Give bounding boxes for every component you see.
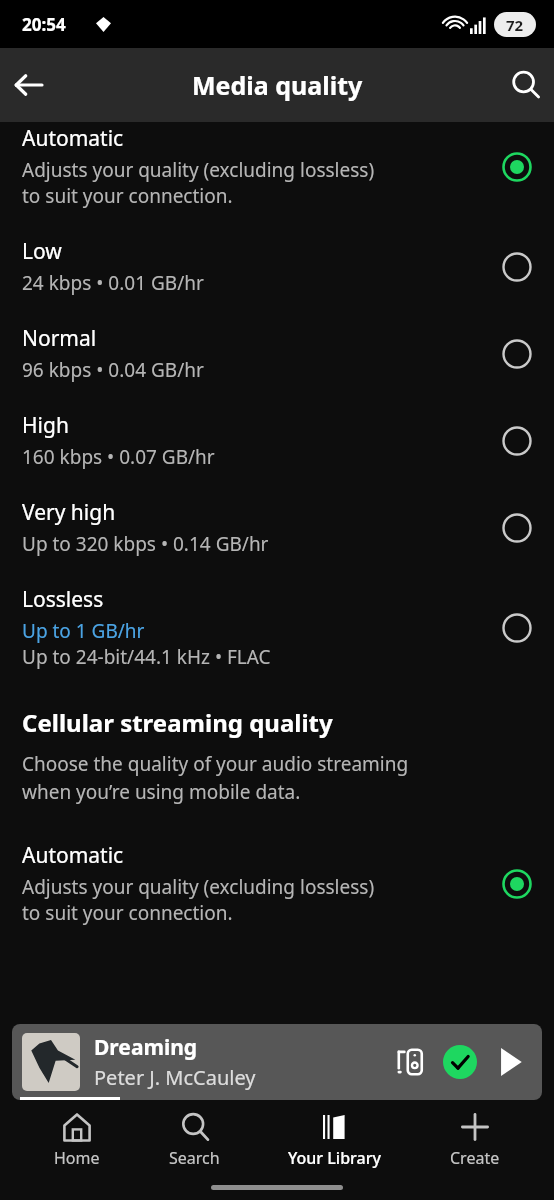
- staticText: Automatic: [22, 841, 124, 870]
- button[interactable]: Automatic: [0, 124, 554, 223]
- staticText: Media quality: [192, 68, 363, 102]
- staticText: Very high: [22, 498, 116, 527]
- staticText: Up to 24-bit/44.1 kHz • FLAC: [22, 644, 271, 670]
- button[interactable]: Dreaming: [12, 1024, 542, 1100]
- button[interactable]: Low: [0, 223, 554, 310]
- staticText: Choose the quality of your audio streami…: [22, 751, 409, 805]
- staticText: Automatic: [22, 124, 124, 153]
- button[interactable]: Lossless: [0, 571, 554, 684]
- staticText: Cellular streaming quality: [22, 706, 333, 739]
- staticText: Up to 1 GB/hr: [22, 618, 145, 644]
- staticText: Home: [54, 1147, 100, 1169]
- staticText: Lossless: [22, 585, 104, 614]
- button[interactable]: Normal: [0, 310, 554, 397]
- staticText: Normal: [22, 324, 97, 353]
- button[interactable]: Connect to a device: [388, 1040, 432, 1084]
- staticText: 160 kbps • 0.07 GB/hr: [22, 444, 215, 470]
- staticText: 96 kbps • 0.04 GB/hr: [22, 357, 204, 383]
- staticText: 72: [506, 15, 524, 35]
- staticText: 20:54: [22, 13, 66, 36]
- button[interactable]: Your Library: [274, 1108, 395, 1173]
- staticText: to suit your connection.: [22, 900, 233, 926]
- button[interactable]: High: [0, 397, 554, 484]
- button[interactable]: Home: [40, 1108, 114, 1173]
- button[interactable]: Create: [436, 1108, 514, 1173]
- button[interactable]: Search: [155, 1108, 234, 1173]
- button[interactable]: Search: [498, 57, 554, 113]
- staticText: Peter J. McCauley: [94, 1064, 256, 1091]
- staticText: High: [22, 411, 69, 440]
- staticText: Create: [450, 1147, 500, 1169]
- staticText: Search: [169, 1147, 220, 1169]
- staticText: Dreaming: [94, 1033, 198, 1062]
- button[interactable]: Saved: [438, 1040, 482, 1084]
- staticText: Adjusts your quality (excluding lossless…: [22, 157, 375, 183]
- staticText: Your Library: [288, 1147, 381, 1169]
- staticText: to suit your connection.: [22, 183, 233, 209]
- button[interactable]: Back: [0, 57, 56, 113]
- staticText: Adjusts your quality (excluding lossless…: [22, 874, 375, 900]
- staticText: Up to 320 kbps • 0.14 GB/hr: [22, 531, 269, 557]
- staticText: 24 kbps • 0.01 GB/hr: [22, 270, 204, 296]
- button[interactable]: Automatic: [0, 827, 554, 940]
- button[interactable]: Very high: [0, 484, 554, 571]
- staticText: Low: [22, 237, 62, 266]
- button[interactable]: Play: [488, 1040, 532, 1084]
